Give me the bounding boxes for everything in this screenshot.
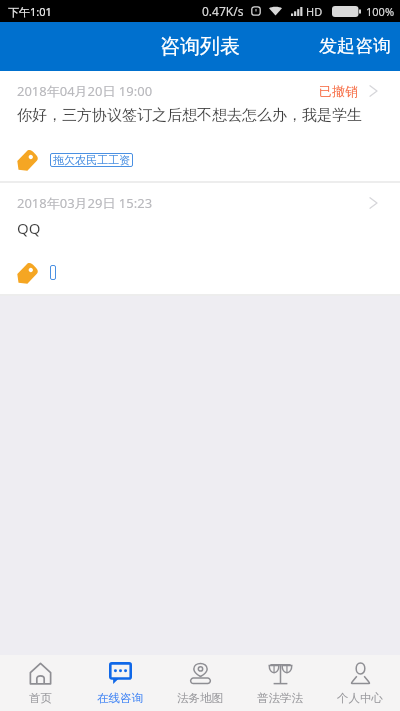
button[interactable]: 法务地图 bbox=[160, 655, 240, 711]
button[interactable]: 发起咨询 bbox=[310, 22, 400, 71]
staticText: 你好，三方协议签订之后想不想去怎么办，我是学生 bbox=[17, 106, 362, 125]
staticText: 拖欠农民工工资 bbox=[53, 153, 130, 167]
staticText: 2018年04月20日 19:00 bbox=[17, 82, 153, 100]
button[interactable]: 首页 bbox=[0, 655, 80, 711]
button[interactable]: 个人中心 bbox=[320, 655, 400, 711]
staticText: 0.47K/s bbox=[202, 3, 244, 19]
staticText: 发起咨询 bbox=[319, 35, 391, 58]
staticText: 已撤销 bbox=[319, 83, 358, 99]
staticText: 在线咨询 bbox=[97, 691, 143, 705]
staticText: 下午1:01 bbox=[8, 4, 52, 19]
staticText: 个人中心 bbox=[337, 691, 383, 705]
staticText: QQ bbox=[17, 218, 41, 238]
staticText: 100% bbox=[366, 4, 395, 19]
button[interactable]: 普法学法 bbox=[240, 655, 320, 711]
staticText: 2018年03月29日 15:23 bbox=[17, 194, 153, 212]
staticText: 普法学法 bbox=[257, 691, 303, 705]
staticText: 法务地图 bbox=[177, 691, 223, 705]
staticText: HD bbox=[306, 4, 323, 19]
staticText: 咨询列表 bbox=[160, 34, 240, 59]
staticText: 首页 bbox=[29, 691, 52, 705]
button[interactable]: 2018年03月29日 15:23 bbox=[0, 183, 400, 296]
button[interactable]: 2018年04月20日 19:00 bbox=[0, 71, 400, 183]
button[interactable]: 在线咨询 bbox=[80, 655, 160, 711]
